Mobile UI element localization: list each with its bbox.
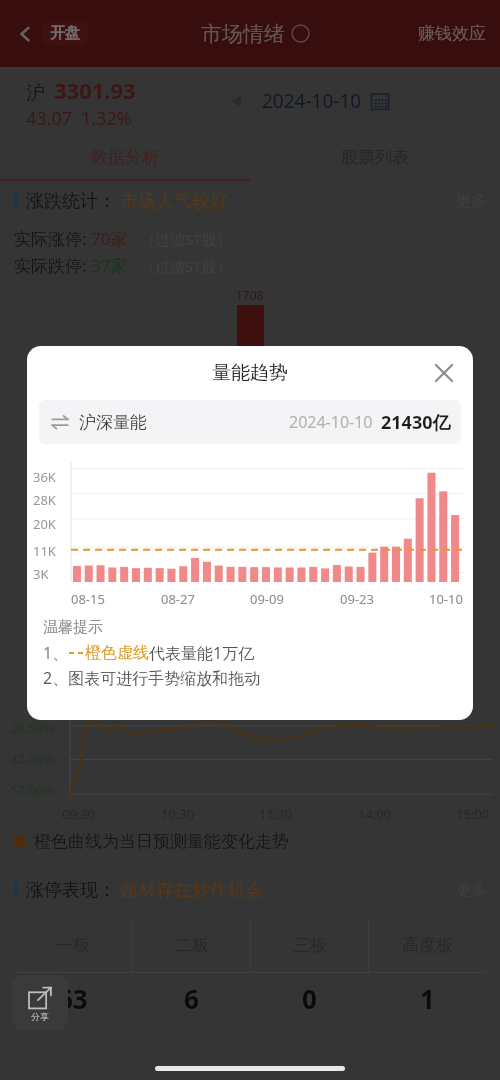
staticText: 高度板 <box>402 935 453 956</box>
button[interactable]: Help <box>291 24 310 43</box>
other: Back <box>14 23 36 45</box>
staticText: 3K <box>33 565 49 583</box>
staticText: 数据分析 <box>91 147 159 168</box>
staticText: 温馨提示 <box>43 618 103 637</box>
staticText: 14:00 <box>358 805 392 823</box>
staticText: 分享 <box>31 1011 49 1022</box>
staticText: 沪 <box>26 81 45 105</box>
staticText: 实际涨停: <box>14 227 87 250</box>
button[interactable]: Back <box>14 21 94 46</box>
staticText: 二板 <box>175 935 209 956</box>
staticText: 一板 <box>56 935 90 956</box>
staticText: -57.06% <box>6 781 55 799</box>
staticText: 沪深量能 <box>79 412 147 433</box>
staticText: 开盘 <box>50 24 80 43</box>
staticText: 实际跌停: <box>14 254 87 277</box>
staticText: 43.07 <box>26 106 73 131</box>
other: Calendar <box>370 91 390 111</box>
staticText: 涨停表现： <box>26 879 116 902</box>
staticText: 08-27 <box>161 590 195 608</box>
staticText: 09:30 <box>62 805 96 823</box>
staticText: 0 <box>302 981 317 1016</box>
staticText: 09-23 <box>340 590 374 608</box>
staticText: 代表量能1万亿 <box>149 642 255 664</box>
staticText: 63 <box>58 981 88 1016</box>
staticText: 08-15 <box>71 590 105 608</box>
staticText: 更多 <box>456 881 486 900</box>
staticText: 2024-10-10 <box>262 88 362 114</box>
button[interactable]: 更多 <box>456 192 486 211</box>
staticText: 09-09 <box>250 590 284 608</box>
staticText: 三板 <box>293 935 327 956</box>
staticText: 1 <box>420 981 435 1016</box>
staticText: 10:30 <box>161 805 195 823</box>
staticText: 11K <box>33 542 56 560</box>
staticText: 2024-10-10 <box>289 411 373 433</box>
staticText: 3301.93 <box>54 75 136 105</box>
staticText: 量能趋势 <box>212 361 288 385</box>
button[interactable]: 沪深量能 <box>39 400 461 444</box>
staticText: 赚钱效应 <box>418 23 486 44</box>
staticText: 28K <box>33 491 56 509</box>
button[interactable]: Share <box>12 975 68 1031</box>
staticText: （过滤ST股） <box>140 256 232 276</box>
staticText: 37家 <box>91 254 128 277</box>
staticText: 15:00 <box>456 805 490 823</box>
staticText: -42.80% <box>6 750 55 768</box>
staticText: 70家 <box>91 227 128 250</box>
staticText: 11:30 <box>259 805 293 823</box>
staticText: 6 <box>184 981 199 1016</box>
staticText: 更多 <box>456 192 486 211</box>
staticText: （过滤ST股） <box>140 229 232 249</box>
staticText: 市场情绪 <box>201 21 285 47</box>
staticText: -28.53% <box>6 719 55 737</box>
button[interactable]: 赚钱效应 <box>418 23 486 44</box>
staticText: 2、图表可进行手势缩放和拖动 <box>43 667 261 689</box>
staticText: 题材存在炒作机会 <box>120 879 264 902</box>
staticText: 1.32% <box>81 106 132 131</box>
button[interactable]: 更多 <box>456 881 486 900</box>
staticText: 橙色曲线为当日预测量能变化走势 <box>34 831 289 852</box>
staticText: 1、 <box>43 642 69 664</box>
staticText: 股票列表 <box>341 147 409 168</box>
staticText: 21430亿 <box>381 410 451 435</box>
staticText: 20K <box>33 515 56 533</box>
staticText: 涨跌统计： <box>26 190 116 213</box>
button[interactable]: Close <box>429 358 459 388</box>
staticText: 1708 <box>236 287 264 303</box>
staticText: 36K <box>33 468 56 486</box>
button[interactable]: Previous day <box>226 88 390 114</box>
staticText: 市场人气较好 <box>120 190 228 213</box>
button[interactable]: 数据分析 <box>0 135 250 179</box>
staticText: 橙色虚线 <box>85 643 149 663</box>
other: Previous day <box>226 90 248 112</box>
staticText: 10-10 <box>429 590 463 608</box>
